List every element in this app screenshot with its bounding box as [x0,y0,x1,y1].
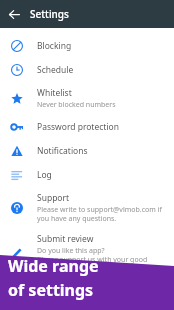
button[interactable]: Support [0,187,174,228]
button[interactable]: Schedule [0,58,174,82]
staticText: Settings [30,7,69,21]
staticText: Password protection [37,121,119,133]
button[interactable]: Log [0,163,174,187]
staticText: Notifications [37,145,88,157]
staticText: Do you like this app? Please support us … [37,246,168,273]
staticText: of settings [8,279,94,301]
button[interactable]: Password protection [0,115,174,139]
button[interactable]: Notifications [0,139,174,163]
staticText: Whitelist [37,87,72,99]
staticText: Support [37,192,70,204]
staticText: Please write to support@vlmob.com if you… [37,205,168,223]
staticText: Log [37,169,52,181]
button[interactable]: Back [6,6,22,22]
staticText: Never blocked numbers [37,100,116,110]
button[interactable]: Blocking [0,34,174,58]
staticText: Schedule [37,64,74,76]
staticText: Wide range [8,255,99,277]
button[interactable]: Submit review [0,228,174,278]
button[interactable]: Whitelist [0,82,174,115]
staticText: Blocking [37,40,72,52]
staticText: Submit review [37,233,94,245]
